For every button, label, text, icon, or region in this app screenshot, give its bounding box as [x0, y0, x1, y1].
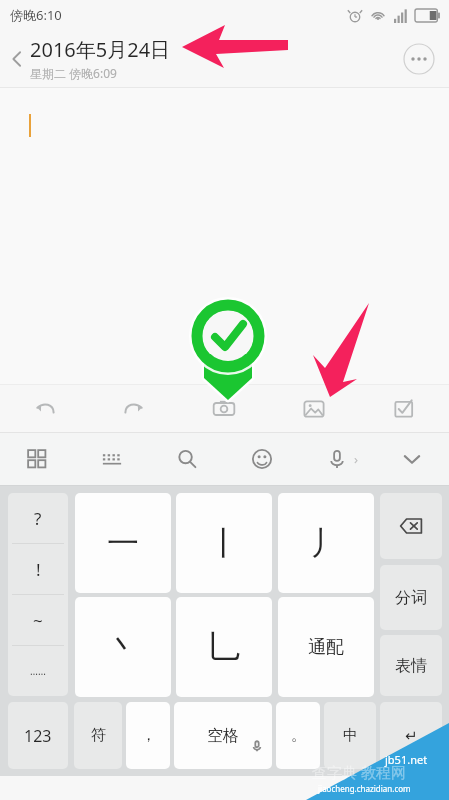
- staticText: 符: [91, 726, 106, 745]
- staticText: 表情: [395, 656, 427, 676]
- staticText: ~: [33, 609, 43, 632]
- staticText: 123: [24, 725, 52, 747]
- staticText: 丨: [208, 523, 240, 563]
- button[interactable]: Gallery: [269, 385, 359, 432]
- button[interactable]: Hide keyboard: [374, 433, 449, 485]
- staticText: 乚: [208, 627, 240, 667]
- button[interactable]: 符: [74, 702, 122, 769]
- button[interactable]: 丿: [278, 493, 374, 593]
- button[interactable]: ，: [126, 702, 170, 769]
- staticText: ?: [34, 507, 42, 530]
- staticText: 星期二 傍晚6:09: [30, 65, 117, 81]
- button[interactable]: 分词: [380, 565, 442, 630]
- button[interactable]: 乚: [176, 597, 272, 697]
- button[interactable]: Emoji: [224, 433, 299, 485]
- button[interactable]: ↵: [380, 702, 442, 769]
- button[interactable]: Voice input: [299, 433, 374, 485]
- staticText: 空格: [207, 726, 239, 746]
- staticText: !: [36, 558, 41, 581]
- button[interactable]: Search: [149, 433, 224, 485]
- staticText: 丶: [107, 627, 139, 667]
- staticText: 中: [343, 726, 358, 745]
- button[interactable]: 。: [276, 702, 320, 769]
- staticText: 丿: [310, 523, 342, 563]
- button[interactable]: 123: [8, 702, 68, 769]
- button[interactable]: 丨: [176, 493, 272, 593]
- button[interactable]: Undo: [0, 385, 89, 432]
- button[interactable]: 通配: [278, 597, 374, 697]
- staticText: 。: [291, 726, 306, 745]
- button[interactable]: 一: [75, 493, 171, 593]
- button[interactable]: 中: [324, 702, 376, 769]
- staticText: jiaocheng.chazidian.com: [318, 783, 411, 794]
- button[interactable]: 表情: [380, 635, 442, 696]
- button[interactable]: Camera: [179, 385, 269, 432]
- staticText: ……: [30, 664, 46, 678]
- staticText: 查字典 教程网: [312, 762, 406, 782]
- button[interactable]: Back: [4, 46, 30, 72]
- staticText: ↵: [405, 727, 418, 744]
- button[interactable]: Checklist: [359, 385, 449, 432]
- button[interactable]: Keyboard layout: [74, 433, 149, 485]
- button[interactable]: Redo: [89, 385, 179, 432]
- staticText: ，: [141, 726, 156, 745]
- button[interactable]: 空格: [174, 702, 272, 769]
- staticText: ›: [354, 450, 359, 468]
- staticText: 傍晚6:10: [10, 6, 62, 24]
- staticText: jb51.net: [385, 752, 428, 767]
- staticText: 一: [107, 523, 139, 563]
- button[interactable]: More options: [403, 43, 435, 75]
- staticText: 2016年5月24日: [30, 36, 171, 63]
- button[interactable]: ?: [8, 493, 68, 696]
- button[interactable]: Backspace: [380, 493, 442, 559]
- staticText: 分词: [395, 588, 427, 608]
- button[interactable]: 丶: [75, 597, 171, 697]
- button[interactable]: Apps: [0, 433, 74, 485]
- staticText: 通配: [308, 636, 344, 659]
